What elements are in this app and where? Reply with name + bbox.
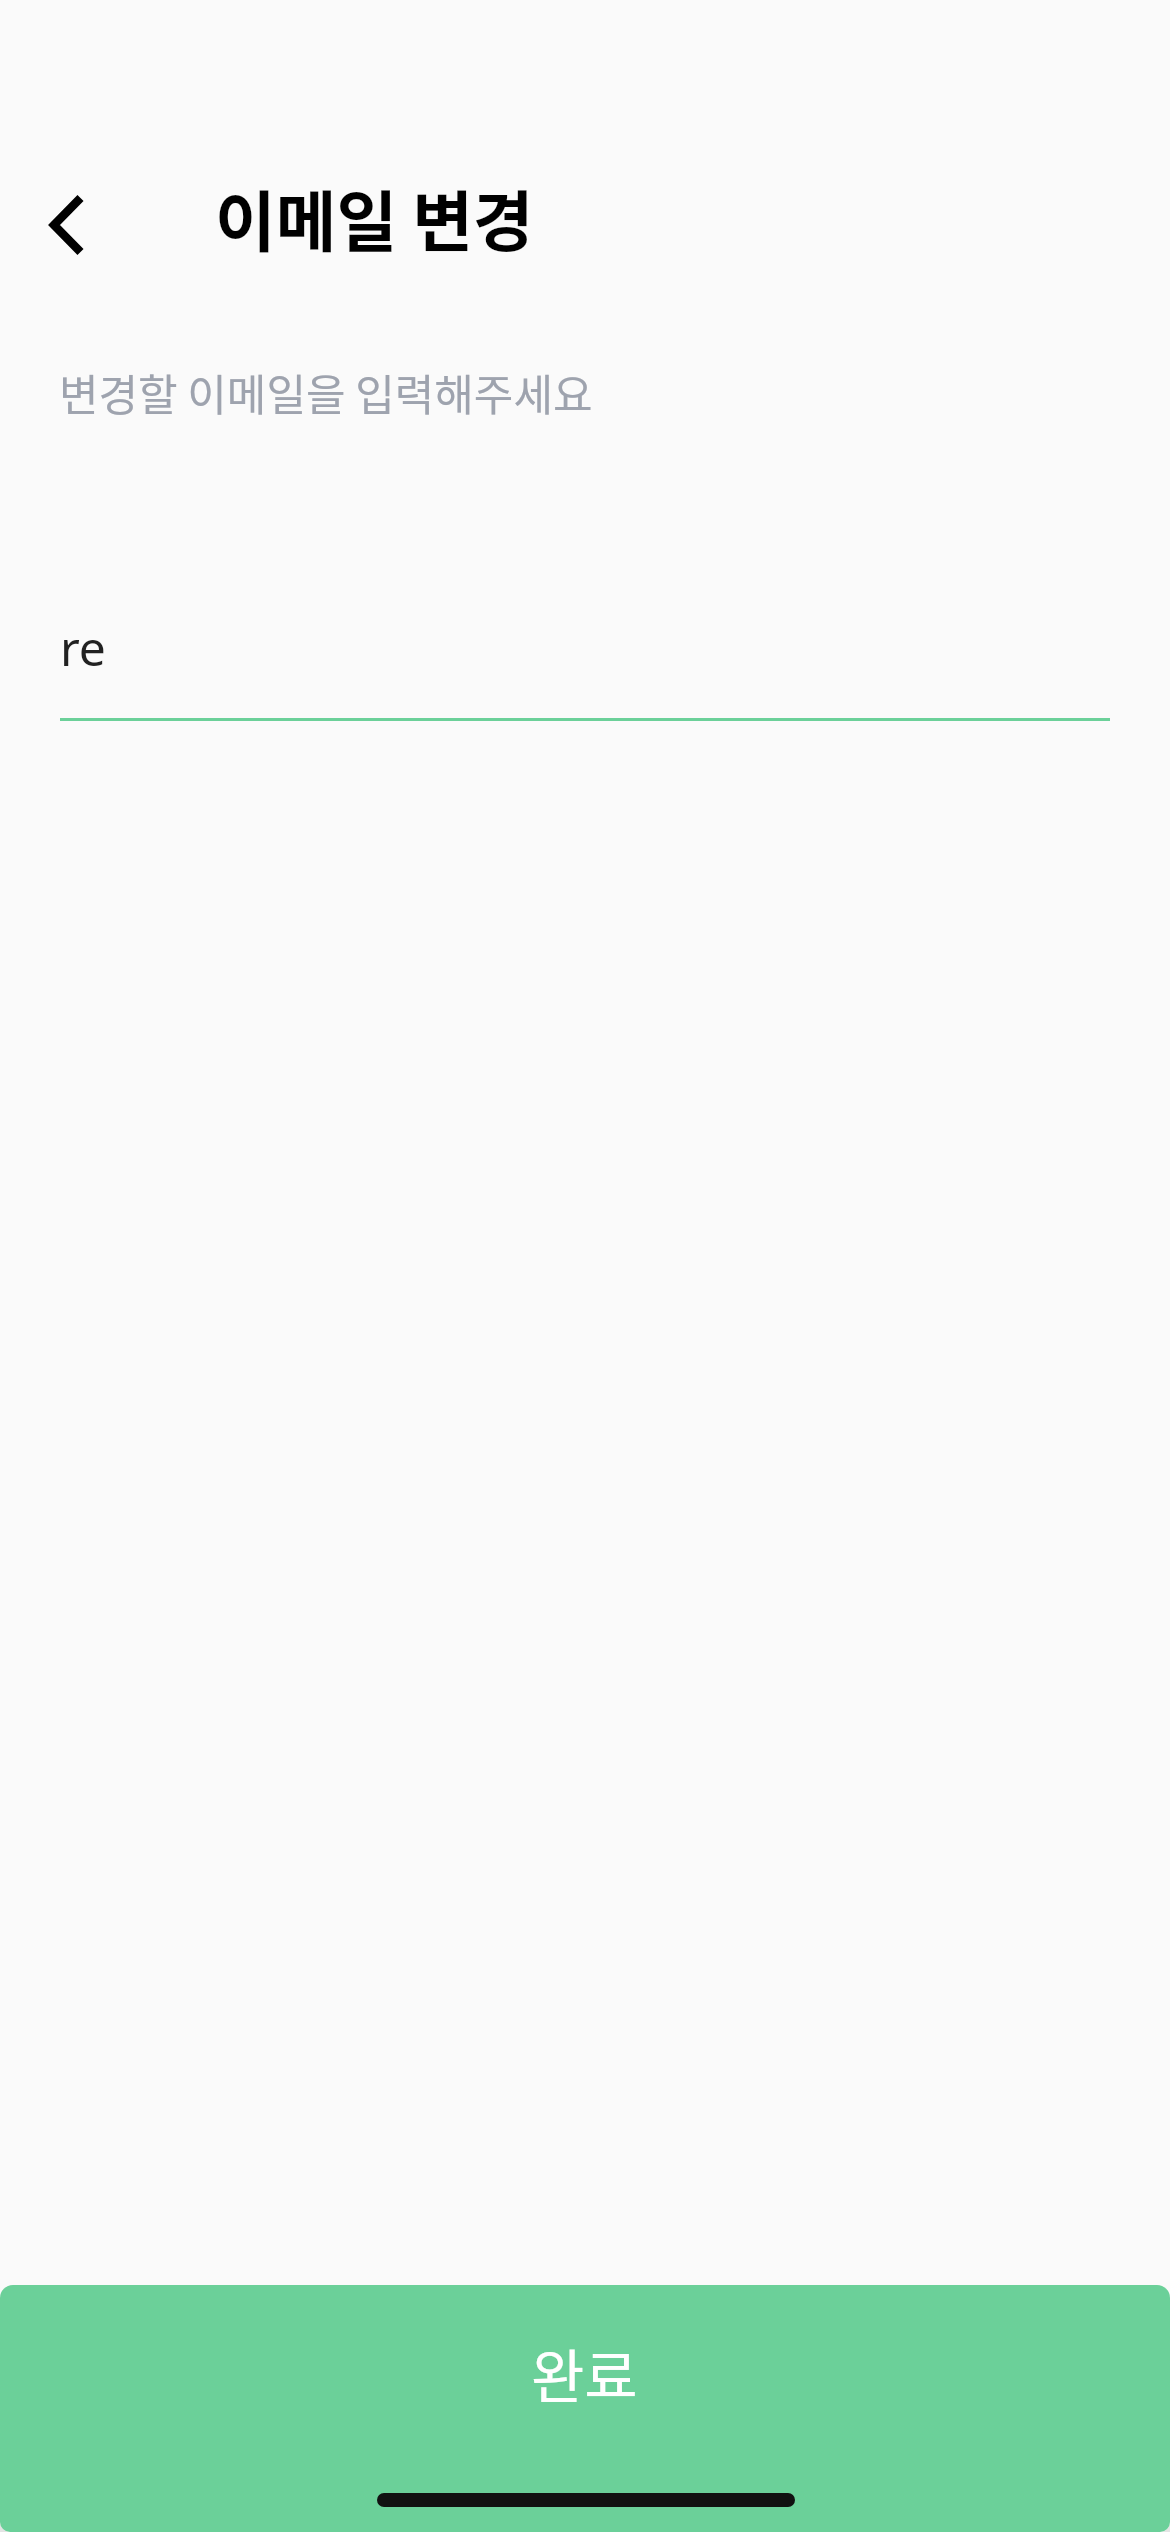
button[interactable]: 완료 (0, 2285, 1170, 2532)
staticText: 이메일 변경 (215, 169, 534, 265)
staticText: 완료 (531, 2331, 638, 2415)
staticText: re (60, 615, 106, 680)
button[interactable]: Back (6, 164, 126, 284)
button[interactable]: re (0, 615, 1170, 721)
staticText: 변경할 이메일을 입력해주세요 (59, 361, 593, 423)
